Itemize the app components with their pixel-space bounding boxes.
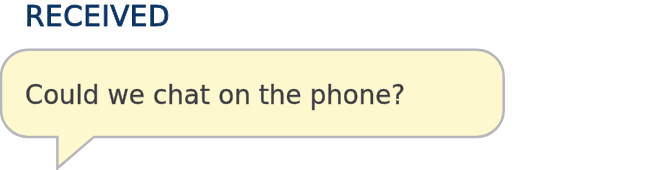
staticText: RECEIVED [25,0,171,33]
staticText: Could we chat on the phone? [25,80,405,110]
button[interactable]: Received message [0,48,506,170]
staticText: Could we chat on the phone? [25,80,405,110]
staticText: RECEIVED [25,0,171,33]
button[interactable]: RECEIVED [25,0,171,33]
